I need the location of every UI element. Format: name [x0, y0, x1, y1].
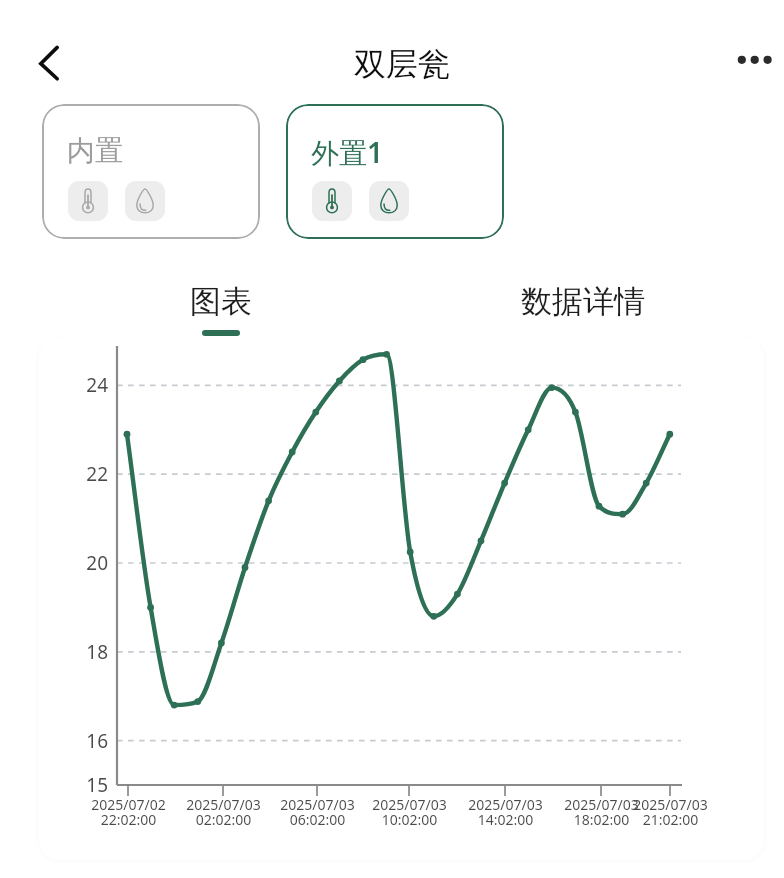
staticText: 2025/07/03 06:02:00 — [280, 795, 355, 829]
button[interactable]: 内置 — [42, 104, 260, 239]
staticText: 图表 — [190, 282, 252, 321]
button[interactable]: 外置1 — [286, 104, 504, 239]
button[interactable]: Temperature — [68, 181, 108, 221]
staticText: 外置1 — [311, 133, 384, 171]
button[interactable]: Humidity — [369, 181, 409, 221]
staticText: 24 — [86, 372, 108, 396]
staticText: 20 — [86, 550, 108, 574]
button[interactable]: Temperature — [312, 181, 352, 221]
button[interactable]: 图表 — [151, 282, 291, 340]
staticText: 2025/07/03 14:02:00 — [468, 795, 543, 829]
staticText: 22 — [86, 461, 108, 485]
button[interactable]: 数据详情 — [513, 282, 653, 340]
staticText: 16 — [86, 728, 108, 752]
staticText: 2025/07/03 02:02:00 — [186, 795, 261, 829]
button[interactable]: Back — [25, 39, 73, 87]
staticText: 2025/07/03 10:02:00 — [372, 795, 447, 829]
staticText: 2025/07/02 22:02:00 — [91, 795, 166, 829]
staticText: 18 — [86, 639, 108, 663]
staticText: 15 — [86, 772, 108, 796]
button[interactable]: More options — [730, 36, 778, 84]
staticText: 内置 — [67, 133, 123, 168]
staticText: 2025/07/03 21:02:00 — [633, 795, 708, 829]
staticText: 数据详情 — [521, 282, 645, 321]
staticText: 2025/07/03 18:02:00 — [564, 795, 639, 829]
staticText: 双层瓮 — [354, 44, 450, 84]
button[interactable]: Humidity — [125, 181, 165, 221]
